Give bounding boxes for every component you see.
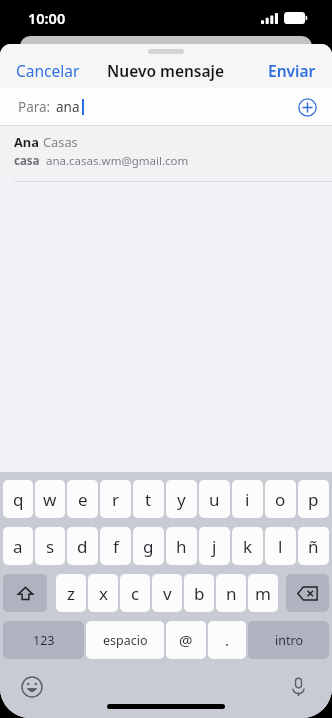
button[interactable]: b (184, 574, 214, 612)
button[interactable]: x (88, 574, 118, 612)
button[interactable]: v (152, 574, 182, 612)
staticText: p (308, 488, 319, 511)
button[interactable]: k (232, 527, 263, 565)
button[interactable]: @ (166, 621, 206, 659)
button[interactable]: t (133, 480, 164, 518)
button[interactable]: m (248, 574, 278, 612)
staticText: j (212, 535, 217, 558)
button[interactable]: Add contact (294, 94, 320, 120)
button[interactable]: espacio (86, 621, 164, 659)
button[interactable]: Dictation (284, 673, 312, 701)
staticText: 10:00 (28, 8, 66, 28)
staticText: b (194, 582, 205, 605)
button[interactable]: p (298, 480, 329, 518)
button[interactable]: Backspace (286, 574, 329, 612)
button[interactable]: o (265, 480, 296, 518)
button[interactable]: Shift (3, 574, 47, 612)
staticText: w (43, 488, 57, 511)
staticText: u (209, 488, 220, 511)
staticText: ana.casas.wm@gmail.com (46, 153, 189, 169)
button[interactable]: l (265, 527, 296, 565)
button[interactable]: e (67, 480, 98, 518)
staticText: ana (56, 98, 80, 116)
button[interactable]: h (166, 527, 197, 565)
staticText: h (176, 535, 187, 558)
staticText: t (145, 488, 152, 511)
staticText: casa (14, 153, 40, 169)
button[interactable]: intro (248, 621, 329, 659)
button[interactable]: Enviar (252, 56, 332, 85)
staticText: s (46, 535, 55, 558)
button[interactable]: z (56, 574, 86, 612)
staticText: i (245, 488, 250, 511)
button[interactable]: Para: (0, 88, 332, 125)
button[interactable]: 123 (3, 621, 84, 659)
staticText: q (13, 488, 24, 511)
staticText: intro (275, 632, 303, 649)
button[interactable]: s (35, 527, 65, 565)
button[interactable]: Emoji keyboard (18, 673, 46, 701)
staticText: Casas (43, 133, 78, 150)
staticText: Nuevo mensaje (107, 60, 225, 81)
staticText: . (225, 630, 230, 650)
staticText: 123 (33, 632, 55, 649)
staticText: Para: (18, 98, 51, 116)
button[interactable]: d (67, 527, 98, 565)
staticText: k (243, 535, 253, 558)
staticText: r (112, 488, 120, 511)
button[interactable]: u (199, 480, 230, 518)
button[interactable]: j (199, 527, 230, 565)
staticText: d (77, 535, 88, 558)
staticText: c (131, 582, 140, 605)
button[interactable]: q (3, 480, 33, 518)
button[interactable]: c (120, 574, 150, 612)
staticText: n (226, 582, 237, 605)
button[interactable]: w (35, 480, 65, 518)
staticText: o (275, 488, 286, 511)
staticText: Ana (14, 133, 39, 150)
button[interactable]: n (216, 574, 246, 612)
button[interactable]: f (100, 527, 131, 565)
staticText: l (278, 535, 283, 558)
staticText: e (78, 488, 88, 511)
button[interactable]: y (166, 480, 197, 518)
button[interactable]: a (3, 527, 33, 565)
staticText: @ (179, 630, 193, 650)
button[interactable]: ñ (298, 527, 329, 565)
button[interactable]: Cancelar (0, 56, 96, 85)
staticText: espacio (103, 632, 148, 649)
button[interactable]: i (232, 480, 263, 518)
staticText: ñ (308, 535, 319, 558)
staticText: f (113, 535, 119, 558)
staticText: m (255, 582, 271, 605)
staticText: z (67, 582, 75, 605)
staticText: x (99, 582, 108, 605)
staticText: v (163, 582, 172, 605)
staticText: y (177, 488, 186, 511)
staticText: Enviar (268, 60, 316, 81)
button[interactable]: Ana (0, 126, 332, 181)
button[interactable]: g (133, 527, 164, 565)
staticText: g (143, 535, 154, 558)
staticText: Cancelar (16, 60, 80, 81)
button[interactable]: . (208, 621, 246, 659)
staticText: a (13, 535, 23, 558)
button[interactable]: r (100, 480, 131, 518)
